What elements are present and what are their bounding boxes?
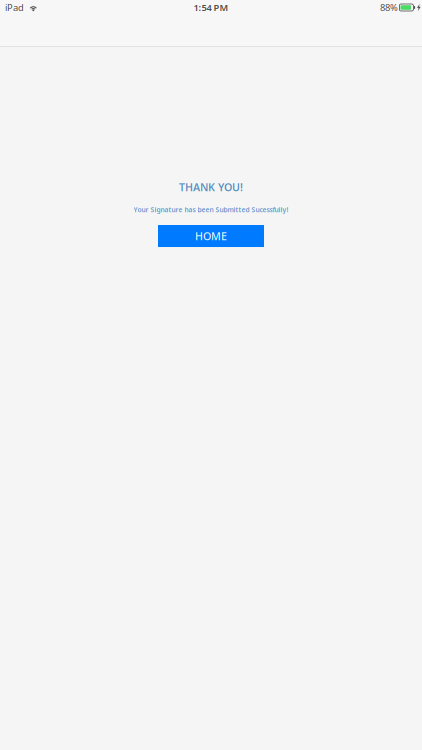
staticText: THANK YOU! bbox=[179, 180, 243, 194]
staticText: Your Signature has been Submitted Sucess… bbox=[133, 205, 288, 214]
staticText: HOME bbox=[195, 229, 227, 243]
staticText: 88% bbox=[380, 1, 398, 14]
staticText: iPad bbox=[5, 1, 24, 14]
staticText: 1:54 PM bbox=[193, 1, 228, 14]
button[interactable]: HOME bbox=[158, 225, 264, 247]
